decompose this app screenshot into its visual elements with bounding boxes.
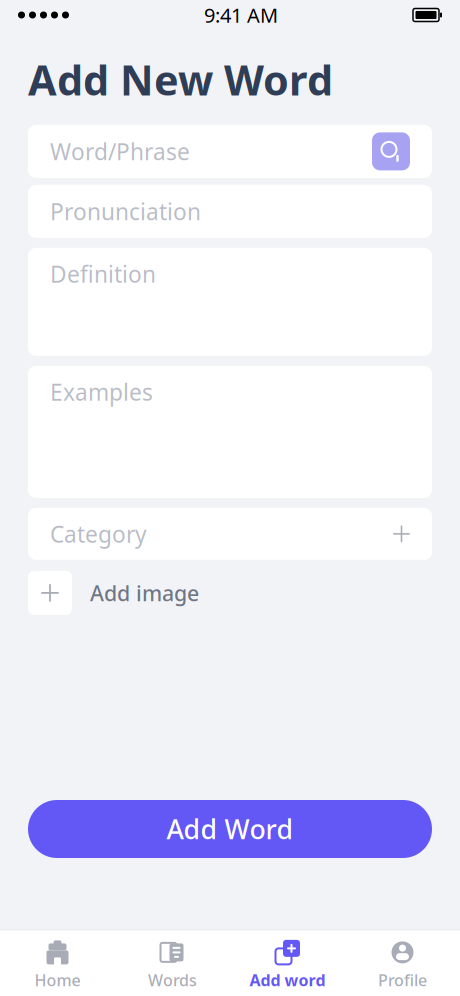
staticText: 9:41 AM <box>204 2 278 28</box>
staticText: Add image <box>90 579 199 607</box>
staticText: Home <box>34 969 80 991</box>
staticText: Definition <box>50 259 156 289</box>
staticText: Word/Phrase <box>50 136 190 166</box>
staticText: Add New Word <box>28 52 333 107</box>
button[interactable]: Category <box>28 508 432 560</box>
button[interactable]: Words <box>115 930 230 996</box>
staticText: Profile <box>378 969 427 991</box>
button[interactable]: Search word <box>372 132 410 170</box>
button[interactable]: Add image <box>28 571 432 615</box>
staticText: Category <box>50 519 147 549</box>
button[interactable]: Profile <box>345 930 460 996</box>
staticText: Add word <box>249 969 325 991</box>
staticText: Examples <box>50 377 153 407</box>
button[interactable]: Home <box>0 930 115 996</box>
button[interactable]: Add Word <box>28 800 432 858</box>
staticText: Pronunciation <box>50 196 201 226</box>
button[interactable]: Add word <box>230 930 345 996</box>
staticText: Words <box>148 969 197 991</box>
staticText: Add Word <box>166 811 293 847</box>
